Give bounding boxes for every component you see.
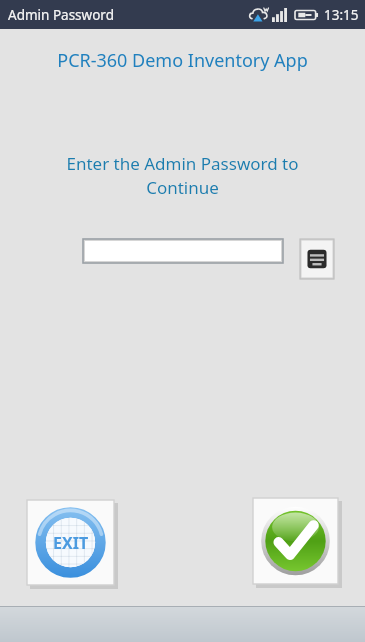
staticText: EXIT <box>53 532 89 554</box>
button[interactable]: Show keyboard <box>300 239 334 279</box>
staticText: Enter the Admin Password to Continue <box>34 152 331 199</box>
staticText: 13:15 <box>324 6 359 24</box>
staticText: Admin Password <box>8 6 114 24</box>
button[interactable]: Confirm <box>253 498 341 587</box>
button[interactable] <box>83 239 283 263</box>
button[interactable]: Exit <box>27 500 117 588</box>
staticText: PCR-360 Demo Inventory App <box>0 48 365 73</box>
